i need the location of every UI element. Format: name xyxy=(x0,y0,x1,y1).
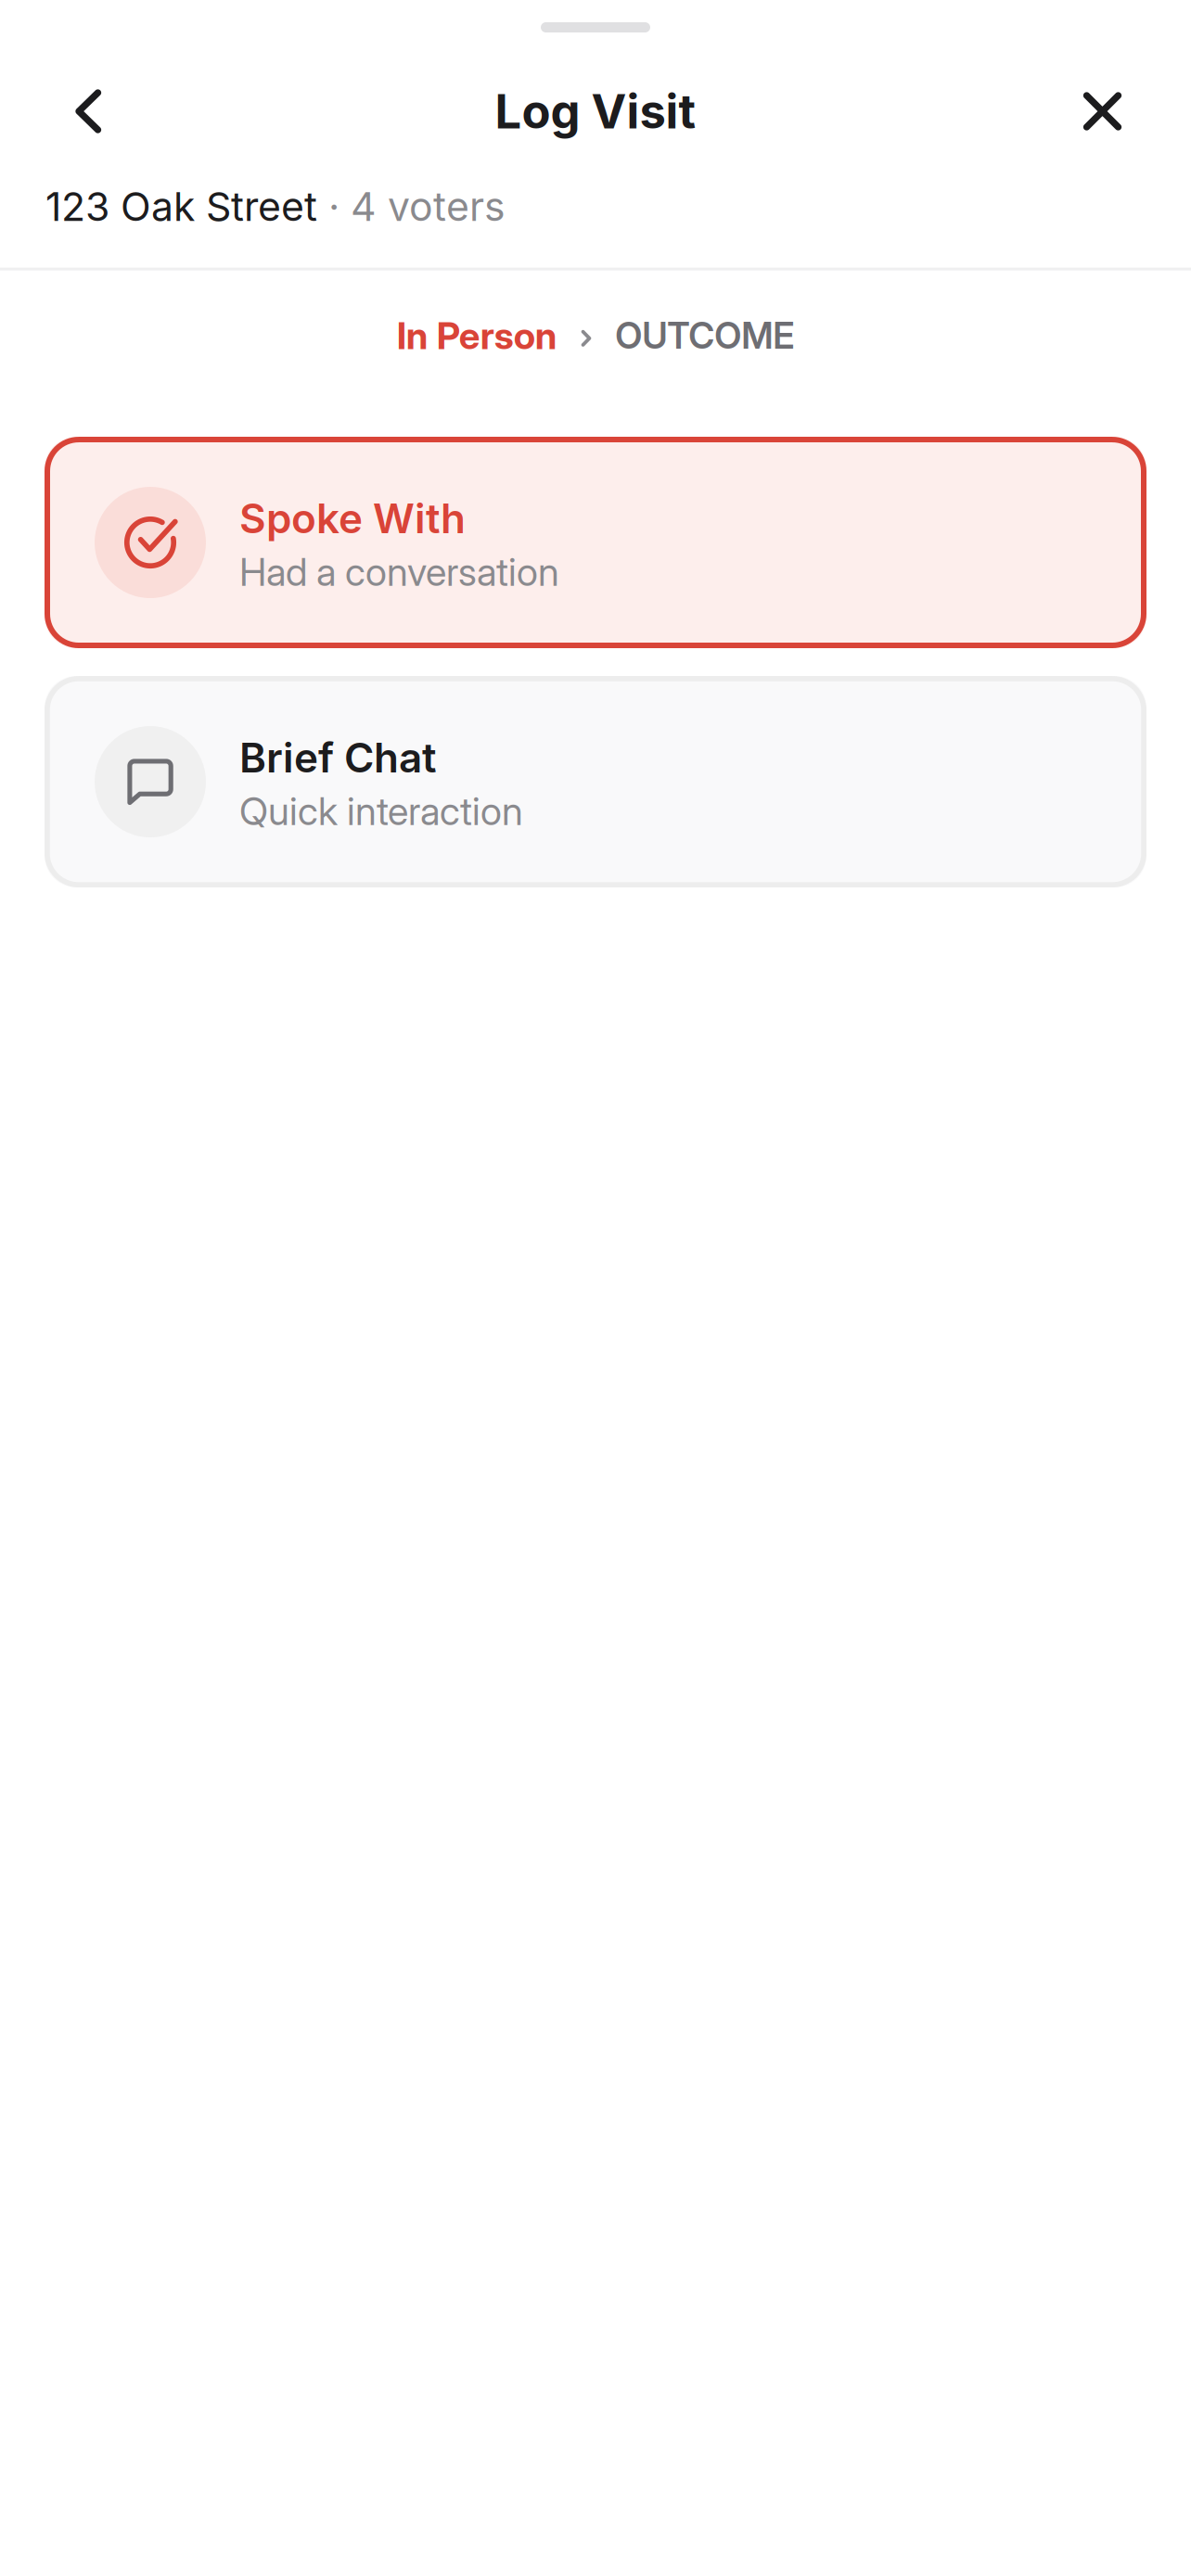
button[interactable]: In Person xyxy=(397,313,557,358)
staticText: In Person xyxy=(397,313,557,358)
staticText: Quick interaction xyxy=(239,788,523,834)
staticText: · xyxy=(317,183,351,231)
button[interactable]: Spoke With xyxy=(45,437,1146,648)
staticText: Brief Chat xyxy=(239,733,437,782)
staticText: OUTCOME xyxy=(615,314,794,357)
staticText: Had a conversation xyxy=(239,549,559,595)
button[interactable]: Back xyxy=(45,67,130,156)
staticText: Log Visit xyxy=(495,83,696,140)
button[interactable]: Brief Chat xyxy=(45,676,1146,887)
staticText: 4 voters xyxy=(351,183,506,231)
staticText: Spoke With xyxy=(239,494,466,543)
staticText: 123 Oak Street xyxy=(45,183,317,231)
button[interactable]: Close xyxy=(1050,67,1146,156)
